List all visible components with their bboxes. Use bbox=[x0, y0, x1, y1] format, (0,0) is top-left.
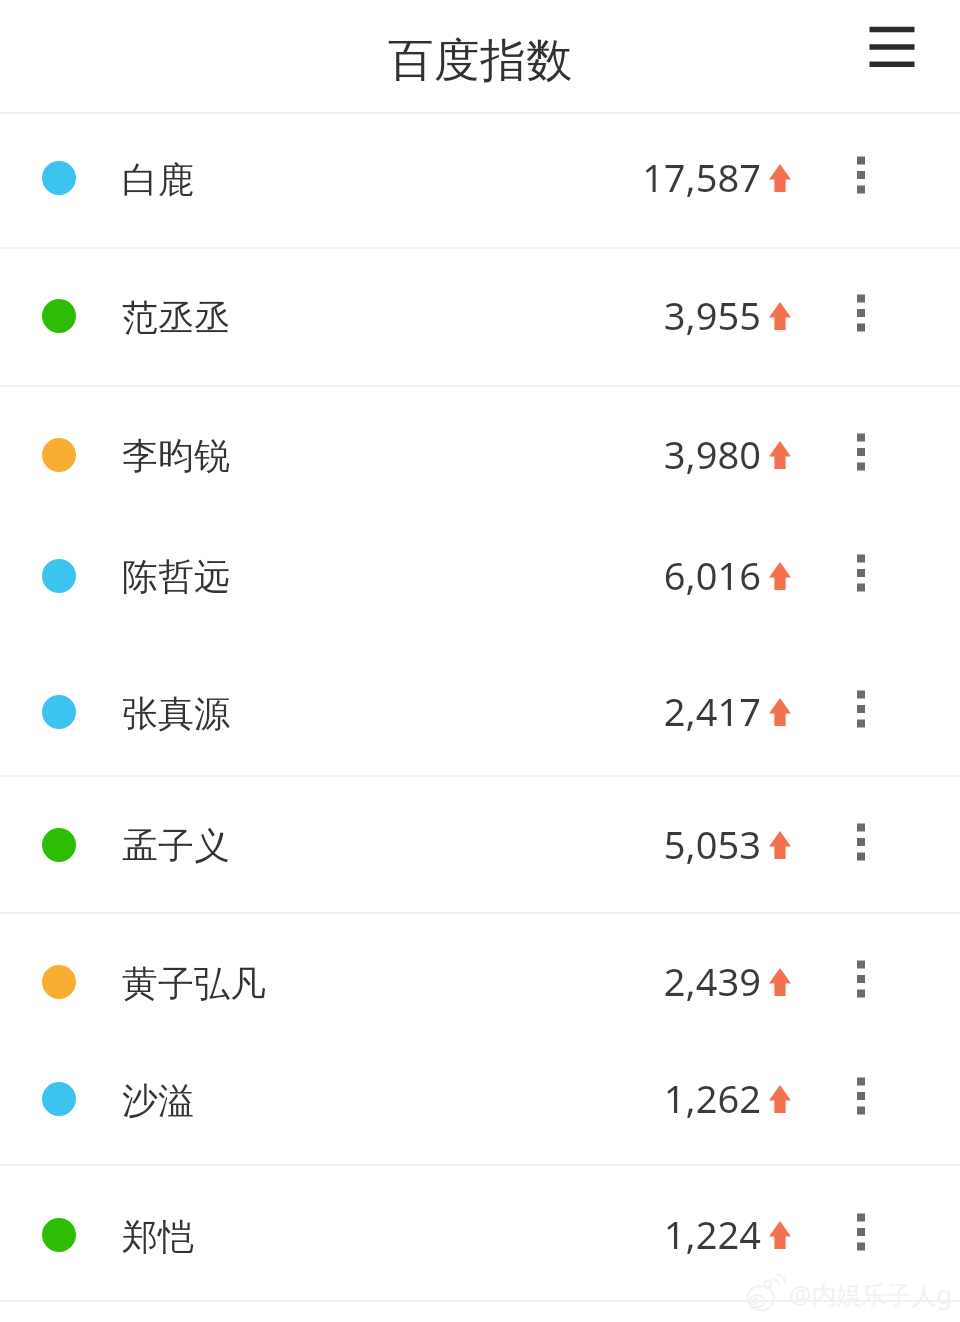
button[interactable]: More options bbox=[837, 818, 885, 866]
button[interactable]: More options bbox=[837, 289, 885, 337]
staticText: 黄子弘凡 bbox=[122, 961, 266, 1006]
button[interactable]: 沙溢 bbox=[0, 1040, 960, 1164]
button[interactable]: More options bbox=[837, 428, 885, 476]
staticText: @内娱乐子人g bbox=[789, 1277, 952, 1311]
staticText: 白鹿 bbox=[122, 157, 194, 202]
button[interactable]: More options bbox=[837, 151, 885, 199]
staticText: 李昀锐 bbox=[122, 433, 230, 478]
button[interactable]: Menu bbox=[856, 12, 928, 84]
button[interactable]: 陈哲远 bbox=[0, 514, 960, 643]
button[interactable]: More options bbox=[837, 955, 885, 1003]
staticText: 郑恺 bbox=[122, 1214, 194, 1259]
staticText: 陈哲远 bbox=[122, 554, 230, 599]
button[interactable]: 孟子义 bbox=[0, 777, 960, 912]
staticText: 1,224 bbox=[663, 1208, 761, 1260]
staticText: 6,016 bbox=[663, 549, 761, 601]
button[interactable]: 黄子弘凡 bbox=[0, 914, 960, 1040]
button[interactable]: 郑恺 bbox=[0, 1166, 960, 1300]
button[interactable]: More options bbox=[837, 1072, 885, 1120]
staticText: 3,955 bbox=[663, 289, 761, 341]
staticText: 张真源 bbox=[122, 691, 230, 736]
button[interactable]: 张真源 bbox=[0, 643, 960, 775]
button[interactable]: 范丞丞 bbox=[0, 249, 960, 385]
staticText: 2,417 bbox=[663, 685, 761, 737]
staticText: 5,053 bbox=[663, 818, 761, 870]
button[interactable]: More options bbox=[837, 549, 885, 597]
staticText: 孟子义 bbox=[122, 823, 230, 868]
button[interactable]: 李昀锐 bbox=[0, 387, 960, 514]
staticText: 3,980 bbox=[663, 428, 761, 480]
staticText: 17,587 bbox=[642, 151, 761, 203]
button[interactable]: More options bbox=[837, 1208, 885, 1256]
staticText: 百度指数 bbox=[388, 32, 572, 90]
button[interactable]: More options bbox=[837, 685, 885, 733]
button[interactable]: 白鹿 bbox=[0, 113, 960, 247]
staticText: 1,262 bbox=[663, 1072, 761, 1124]
staticText: 沙溢 bbox=[122, 1078, 194, 1123]
staticText: 范丞丞 bbox=[122, 295, 230, 340]
staticText: 2,439 bbox=[663, 955, 761, 1007]
